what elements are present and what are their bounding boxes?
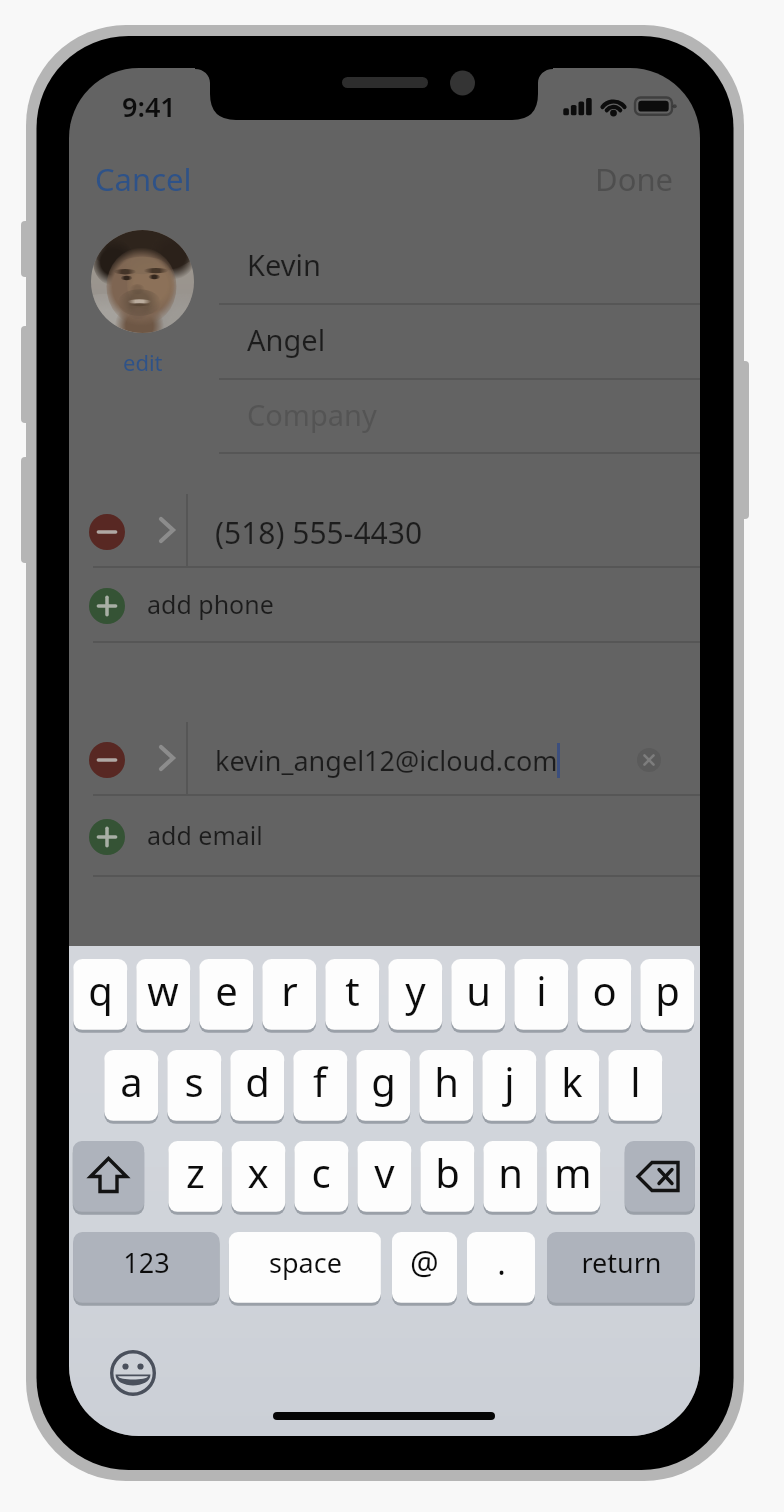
staticText: 9:41 (122, 88, 176, 125)
button[interactable]: . (467, 1232, 535, 1303)
staticText: y (405, 963, 426, 1017)
button[interactable]: e (199, 959, 253, 1030)
staticText: Cancel (95, 158, 192, 200)
staticText: 123 (123, 1244, 170, 1281)
staticText: add email (147, 818, 263, 852)
staticText: n (498, 1145, 523, 1199)
staticText: i (536, 963, 547, 1017)
staticText: q (88, 963, 113, 1017)
staticText: . (497, 1241, 506, 1285)
staticText: return (581, 1244, 662, 1281)
staticText: e (215, 963, 238, 1017)
staticText: k (561, 1054, 583, 1108)
button[interactable]: i (514, 959, 568, 1030)
button[interactable]: Done (569, 144, 700, 214)
staticText: (518) 555-4430 (215, 512, 423, 553)
staticText: Done (595, 158, 674, 200)
button[interactable]: Remove (69, 502, 700, 568)
staticText: Kevin (247, 245, 321, 284)
button[interactable]: Backspace (625, 1141, 695, 1212)
button[interactable]: @ (392, 1232, 457, 1303)
button[interactable]: Kevin (218, 230, 700, 305)
button[interactable]: return (547, 1232, 695, 1303)
staticText: m (554, 1145, 592, 1199)
button[interactable]: Add (89, 588, 125, 624)
button[interactable]: k (545, 1050, 599, 1121)
staticText: d (245, 1054, 270, 1108)
button[interactable]: p (640, 959, 694, 1030)
staticText: a (120, 1054, 143, 1108)
button[interactable]: Angel (218, 305, 700, 380)
staticText: g (371, 1054, 396, 1108)
button[interactable]: c (294, 1141, 348, 1212)
staticText: c (311, 1145, 331, 1199)
button[interactable]: n (483, 1141, 537, 1212)
button[interactable]: Clear text (637, 748, 661, 772)
button[interactable]: 123 (73, 1232, 219, 1303)
button[interactable]: m (546, 1141, 600, 1212)
staticText: kevin_angel12@icloud.com (215, 742, 558, 779)
button[interactable]: space (229, 1232, 381, 1303)
staticText: f (313, 1054, 327, 1108)
button[interactable]: j (482, 1050, 536, 1121)
staticText: space (269, 1244, 342, 1281)
button[interactable]: q (73, 959, 127, 1030)
staticText: @ (410, 1241, 439, 1285)
staticText: add phone (147, 587, 274, 621)
staticText: Angel (247, 320, 326, 359)
button[interactable]: d (230, 1050, 284, 1121)
button[interactable]: Remove (69, 730, 700, 796)
button[interactable]: t (325, 959, 379, 1030)
button[interactable]: s (167, 1050, 221, 1121)
staticText: u (466, 963, 491, 1017)
button[interactable]: a (104, 1050, 158, 1121)
button[interactable]: b (420, 1141, 474, 1212)
button[interactable]: v (357, 1141, 411, 1212)
staticText: x (247, 1145, 269, 1199)
button[interactable]: x (231, 1141, 285, 1212)
button[interactable]: Add (69, 568, 700, 643)
button[interactable]: g (356, 1050, 410, 1121)
button[interactable]: h (419, 1050, 473, 1121)
staticText: b (435, 1145, 460, 1199)
button[interactable]: w (136, 959, 190, 1030)
button[interactable]: f (293, 1050, 347, 1121)
staticText: t (345, 963, 360, 1017)
button[interactable]: z (168, 1141, 222, 1212)
staticText: Company (247, 395, 377, 434)
button[interactable]: Edit photo (91, 230, 194, 333)
button[interactable]: Cancel (69, 144, 218, 214)
staticText: r (281, 963, 298, 1017)
button[interactable]: Remove (89, 742, 125, 778)
staticText: w (147, 963, 179, 1017)
staticText: p (655, 963, 680, 1017)
button[interactable]: u (451, 959, 505, 1030)
button[interactable]: Add (69, 796, 700, 877)
staticText: j (504, 1054, 515, 1108)
button[interactable]: edit (119, 343, 167, 381)
staticText: edit (123, 347, 163, 377)
button[interactable]: y (388, 959, 442, 1030)
staticText: l (630, 1054, 641, 1108)
staticText: o (592, 963, 617, 1017)
button[interactable]: Remove (89, 514, 125, 550)
button[interactable]: l (608, 1050, 662, 1121)
button[interactable]: Emoji keyboard (110, 1350, 156, 1396)
staticText: z (186, 1145, 205, 1199)
button[interactable]: Shift (73, 1141, 144, 1212)
staticText: s (184, 1054, 204, 1108)
button[interactable]: r (262, 959, 316, 1030)
staticText: v (374, 1145, 395, 1199)
staticText: h (434, 1054, 459, 1108)
button[interactable]: o (577, 959, 631, 1030)
button[interactable]: Add (89, 819, 125, 855)
